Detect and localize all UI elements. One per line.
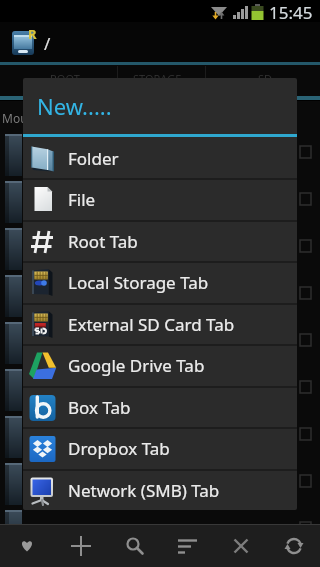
staticText: External SD Card Tab <box>68 313 235 336</box>
button[interactable] <box>267 524 320 567</box>
button[interactable] <box>161 524 214 567</box>
staticText: File <box>68 188 96 211</box>
button[interactable]: File <box>23 178 297 220</box>
button[interactable]: Dropbox Tab <box>23 427 297 469</box>
button[interactable]: Google Drive Tab <box>23 344 297 386</box>
staticText: Folder <box>68 147 119 170</box>
staticText: Root Tab <box>68 230 138 253</box>
staticText: Mou <box>2 110 28 126</box>
button[interactable] <box>108 524 161 567</box>
staticText: Network (SMB) Tab <box>68 479 220 502</box>
staticText: / <box>44 32 51 55</box>
staticText: Box Tab <box>68 396 131 419</box>
button[interactable]: Network (SMB) Tab <box>23 469 297 510</box>
staticText: STORAGE <box>133 71 182 86</box>
staticText: SD <box>258 71 273 86</box>
button[interactable]: External SD Card Tab <box>23 303 297 345</box>
staticText: R <box>28 25 37 43</box>
button[interactable] <box>0 524 54 567</box>
staticText: Local Storage Tab <box>68 271 209 294</box>
staticText: ROOT <box>50 71 80 86</box>
button[interactable]: Box Tab <box>23 386 297 428</box>
staticText: Dropbox Tab <box>68 437 170 460</box>
button[interactable]: Local Storage Tab <box>23 261 297 303</box>
staticText: 15:45 <box>269 1 313 23</box>
button[interactable] <box>54 524 108 567</box>
button[interactable] <box>214 524 267 567</box>
button[interactable]: Folder <box>23 137 297 179</box>
staticText: Google Drive Tab <box>68 354 205 377</box>
button[interactable]: Root Tab <box>23 220 297 262</box>
staticText: New..... <box>37 91 112 121</box>
